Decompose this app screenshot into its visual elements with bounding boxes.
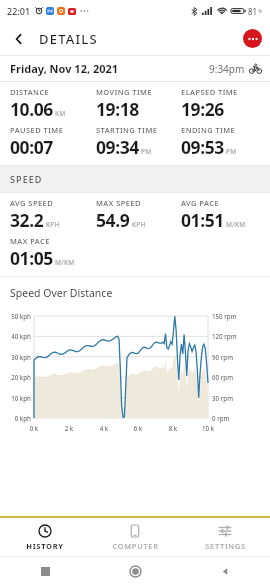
staticText: % xyxy=(258,8,263,15)
staticText: 120 rpm xyxy=(212,332,237,340)
staticText: AVG SPEED xyxy=(10,198,54,208)
button[interactable]: SETTINGS xyxy=(180,518,270,556)
staticText: STARTING TIME xyxy=(96,125,158,135)
staticText: 81 xyxy=(248,6,258,17)
staticText: 30 kph xyxy=(0,353,31,361)
staticText: MAX SPEED xyxy=(96,198,141,208)
button[interactable]: HISTORY xyxy=(0,518,90,556)
staticText: KM xyxy=(55,109,66,118)
button[interactable]: Recents xyxy=(0,557,90,585)
staticText: PM xyxy=(141,147,152,156)
staticText: 50 kph xyxy=(0,312,31,320)
staticText: 4 k xyxy=(93,424,115,432)
staticText: M/KM xyxy=(55,258,75,267)
button[interactable]: Back xyxy=(180,557,270,585)
staticText: 09:34 xyxy=(96,135,139,159)
staticText: 0 k xyxy=(23,424,45,432)
staticText: 6 k xyxy=(127,424,149,432)
staticText: KPH xyxy=(46,220,60,229)
button[interactable]: Home xyxy=(90,557,180,585)
staticText: 00:07 xyxy=(10,135,53,159)
staticText: 54.9 xyxy=(96,208,130,232)
staticText: 09:53 xyxy=(181,135,224,159)
staticText: 150 rpm xyxy=(212,312,237,320)
staticText: HISTORY xyxy=(26,541,64,551)
staticText: 0 kph xyxy=(0,414,31,422)
staticText: 40 kph xyxy=(0,332,31,340)
staticText: SPEED xyxy=(10,173,43,185)
staticText: 9:34pm xyxy=(209,62,245,76)
staticText: 60 rpm xyxy=(212,373,234,381)
staticText: Speed Over Distance xyxy=(10,286,113,300)
button[interactable]: Back xyxy=(6,26,32,52)
staticText: 10 kph xyxy=(0,394,31,402)
staticText: COMPUTER xyxy=(112,541,159,551)
staticText: 10 k xyxy=(197,424,219,432)
staticText: ELAPSED TIME xyxy=(181,87,238,97)
staticText: 19:26 xyxy=(181,97,224,121)
staticText: 22:01 xyxy=(7,5,31,17)
staticText: 01:51 xyxy=(181,208,224,232)
staticText: 30 rpm xyxy=(212,394,234,402)
button[interactable]: More options xyxy=(243,29,262,48)
staticText: DETAILS xyxy=(39,30,98,48)
staticText: PAUSED TIME xyxy=(10,125,64,135)
staticText: 10.06 xyxy=(10,97,53,121)
button[interactable]: COMPUTER xyxy=(90,518,180,556)
staticText: AVG PACE xyxy=(181,198,220,208)
staticText: M/KM xyxy=(226,220,246,229)
staticText: 0 rpm xyxy=(212,414,230,422)
staticText: Friday, Nov 12, 2021 xyxy=(10,61,119,76)
staticText: 01:05 xyxy=(10,246,53,270)
staticText: 8 k xyxy=(162,424,184,432)
staticText: ENDING TIME xyxy=(181,125,236,135)
staticText: 19:18 xyxy=(96,97,139,121)
staticText: DISTANCE xyxy=(10,87,50,97)
staticText: MAX PACE xyxy=(10,236,50,246)
staticText: 90 rpm xyxy=(212,353,234,361)
staticText: PM xyxy=(226,147,237,156)
staticText: 2 k xyxy=(58,424,80,432)
staticText: 32.2 xyxy=(10,208,44,232)
staticText: MOVING TIME xyxy=(96,87,153,97)
staticText: SETTINGS xyxy=(205,541,246,551)
staticText: KPH xyxy=(132,220,146,229)
staticText: 20 kph xyxy=(0,373,31,381)
